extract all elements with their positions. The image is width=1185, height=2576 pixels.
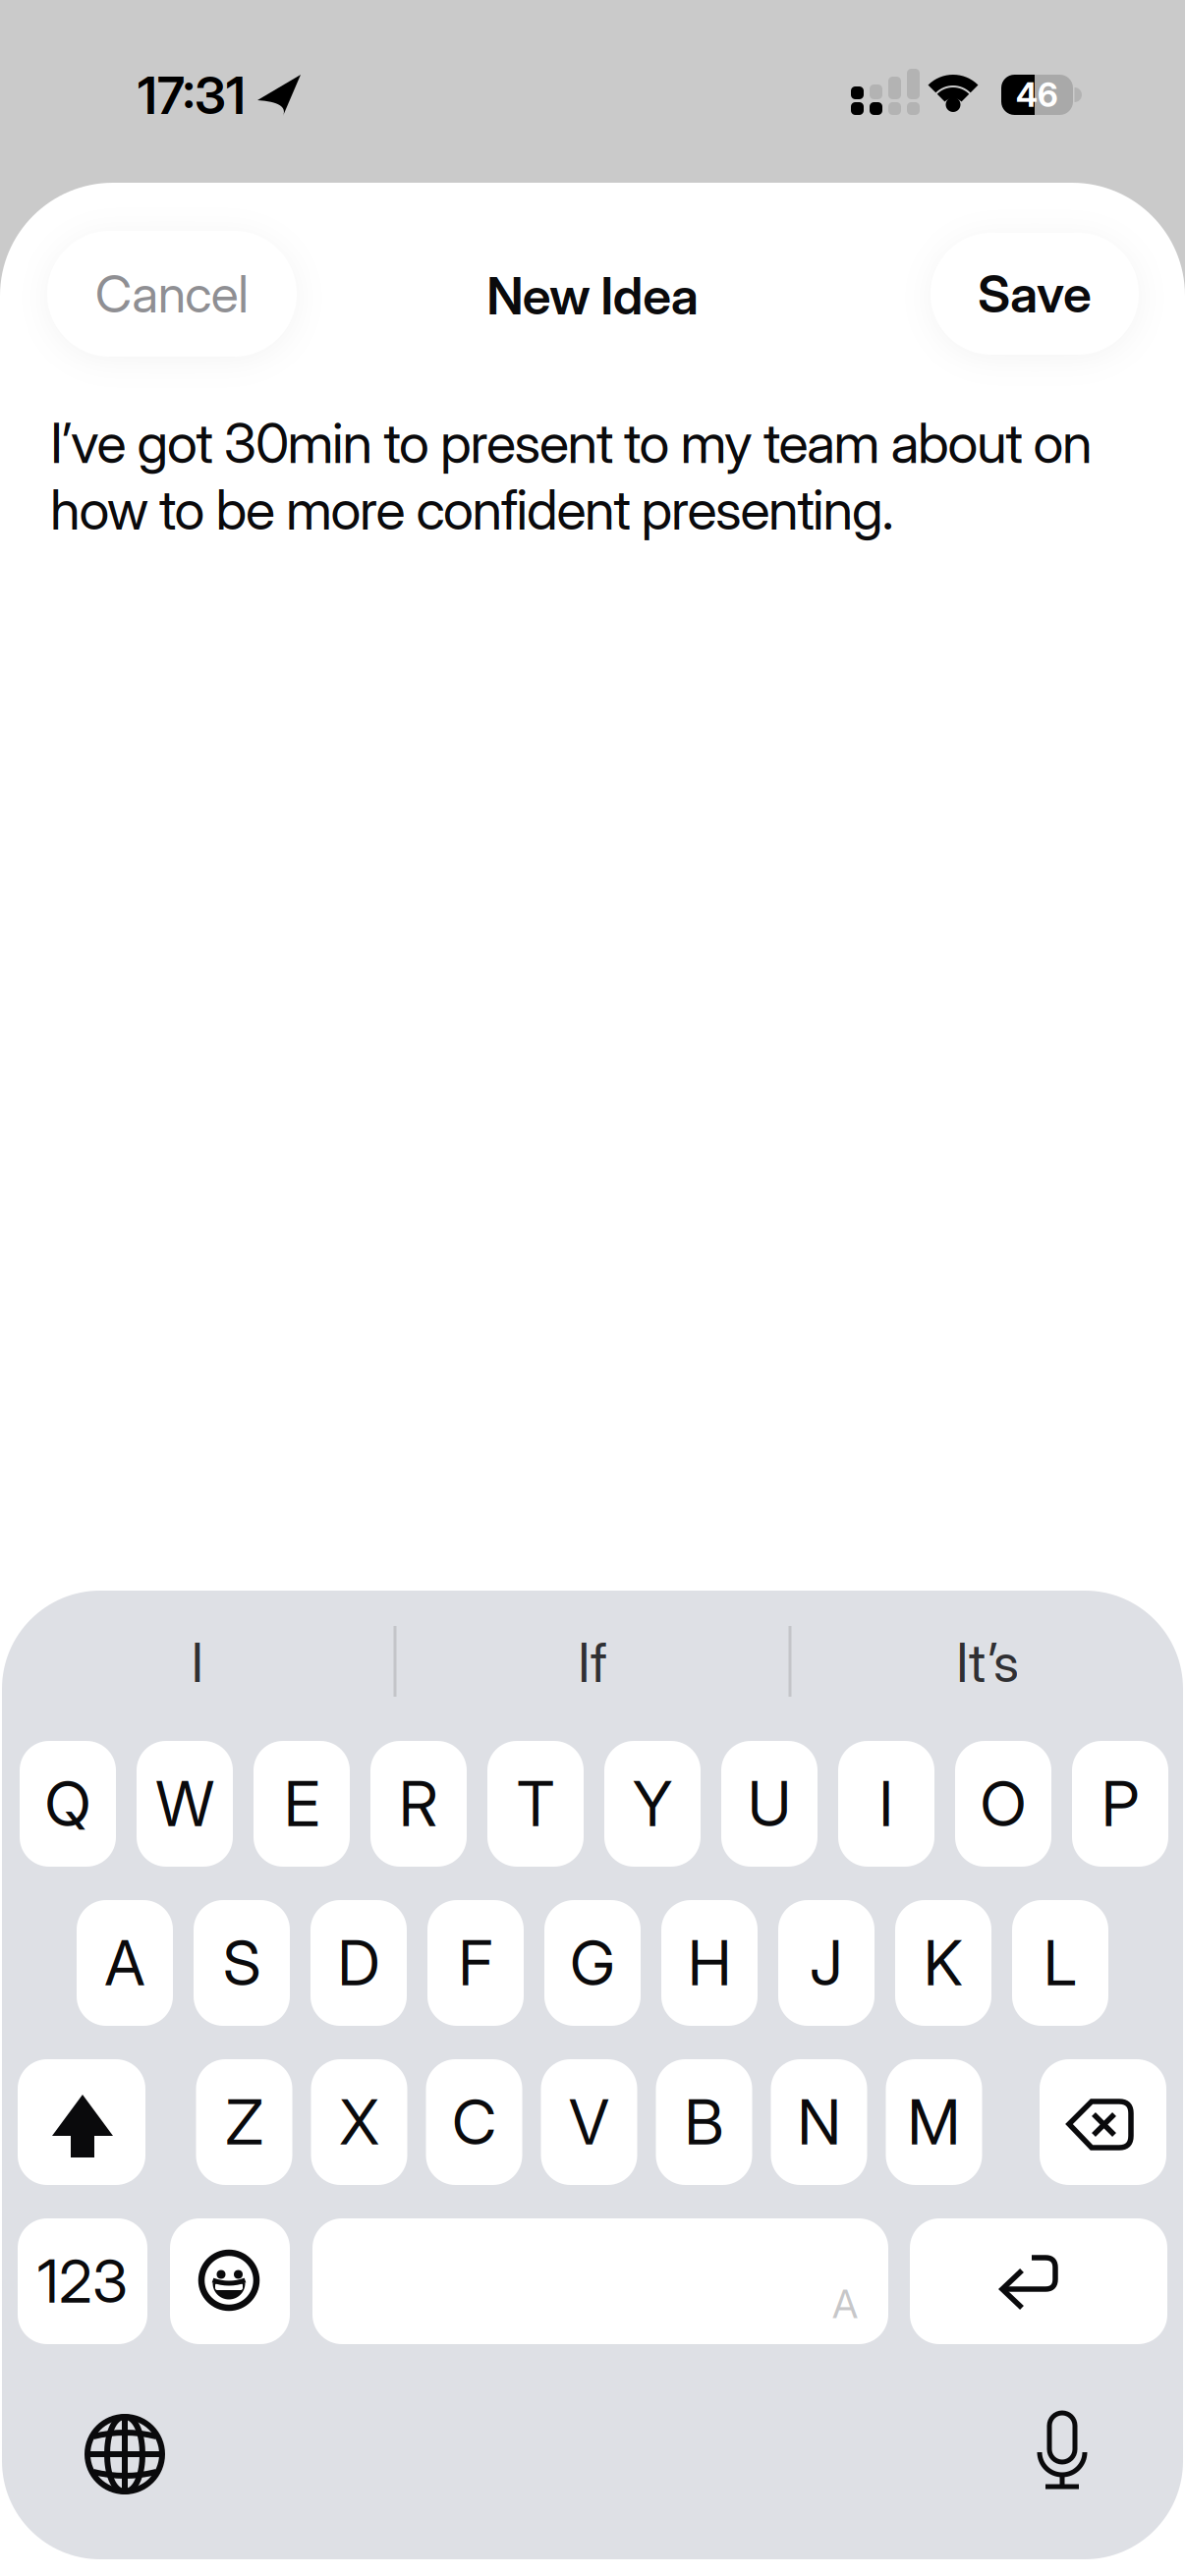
staticText: L [1044, 1926, 1077, 2000]
staticText: R [399, 1767, 438, 1841]
button[interactable]: L [1012, 1900, 1108, 2026]
staticText: X [339, 2085, 379, 2159]
staticText: If [578, 1630, 607, 1695]
button[interactable]: F [427, 1900, 524, 2026]
staticText: N [797, 2085, 841, 2159]
button[interactable]: G [544, 1900, 641, 2026]
button[interactable]: U [721, 1741, 818, 1867]
button[interactable] [910, 2218, 1167, 2344]
staticText: T [517, 1767, 554, 1841]
button[interactable]: A [312, 2218, 888, 2344]
button[interactable]: Save [931, 233, 1139, 355]
staticText: U [748, 1767, 791, 1841]
staticText: F [458, 1926, 493, 2000]
button[interactable]: K [895, 1900, 991, 2026]
button[interactable]: W [137, 1741, 233, 1867]
staticText: 17:31 [138, 64, 246, 126]
button[interactable]: 123 [18, 2218, 147, 2344]
button[interactable]: Y [604, 1741, 701, 1867]
staticText: Save [978, 263, 1092, 325]
staticText: V [569, 2085, 609, 2159]
staticText: 123 [37, 2246, 128, 2317]
button[interactable]: D [310, 1900, 407, 2026]
staticText: Z [226, 2085, 263, 2159]
staticText: Y [633, 1767, 672, 1841]
staticText: I [191, 1630, 204, 1695]
button[interactable] [1013, 2405, 1111, 2503]
staticText: New Idea [487, 265, 698, 327]
staticText: I’ve got 30min to present to my team abo… [50, 410, 1093, 543]
button[interactable]: I [11, 1598, 384, 1726]
button[interactable] [1040, 2059, 1166, 2185]
button[interactable]: V [541, 2059, 637, 2185]
button[interactable]: Q [20, 1741, 116, 1867]
staticText: J [810, 1926, 843, 2000]
staticText: Cancel [95, 263, 249, 325]
button[interactable]: J [778, 1900, 875, 2026]
button[interactable] [76, 2405, 174, 2503]
staticText: H [688, 1926, 731, 2000]
button[interactable]: Z [196, 2059, 292, 2185]
staticText: D [338, 1926, 380, 2000]
button[interactable]: C [426, 2059, 522, 2185]
staticText: It’s [956, 1630, 1019, 1695]
button[interactable]: P [1072, 1741, 1168, 1867]
staticText: W [156, 1767, 214, 1841]
staticText: M [907, 2085, 960, 2159]
button[interactable]: T [487, 1741, 584, 1867]
button[interactable]: If [406, 1598, 779, 1726]
button[interactable]: A [77, 1900, 173, 2026]
staticText: E [284, 1767, 319, 1841]
staticText: B [684, 2085, 724, 2159]
staticText: I [879, 1767, 894, 1841]
button[interactable]: B [656, 2059, 752, 2185]
button[interactable]: R [370, 1741, 467, 1867]
button[interactable]: X [311, 2059, 407, 2185]
button[interactable] [170, 2218, 290, 2344]
button[interactable]: O [955, 1741, 1051, 1867]
staticText: A [832, 2280, 858, 2328]
button[interactable]: E [254, 1741, 350, 1867]
staticText: K [924, 1926, 963, 2000]
staticText: C [452, 2085, 496, 2159]
staticText: G [570, 1926, 615, 2000]
staticText: O [980, 1767, 1026, 1841]
staticText: P [1101, 1767, 1139, 1841]
button[interactable]: It’s [801, 1598, 1174, 1726]
button[interactable]: S [194, 1900, 290, 2026]
button[interactable]: I [838, 1741, 934, 1867]
button[interactable]: N [771, 2059, 867, 2185]
staticText: S [223, 1926, 260, 2000]
staticText: 46 [1016, 75, 1058, 115]
button[interactable] [18, 2059, 145, 2185]
button[interactable]: H [661, 1900, 758, 2026]
button[interactable]: Cancel [47, 231, 297, 357]
button[interactable]: M [886, 2059, 982, 2185]
staticText: A [105, 1926, 145, 2000]
staticText: Q [45, 1767, 91, 1841]
